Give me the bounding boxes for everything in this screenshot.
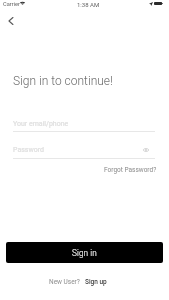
staticText: Forgot Password?: [104, 166, 157, 174]
staticText: 1:38 AM: [77, 1, 100, 8]
button[interactable]: Show password: [139, 143, 152, 156]
button[interactable]: Your email or phone: [13, 117, 155, 132]
button[interactable]: Password: [13, 143, 155, 158]
button[interactable]: Forgot Password?: [104, 166, 157, 174]
staticText: New User?: [49, 278, 80, 286]
staticText: Sign up: [85, 278, 107, 286]
button[interactable]: Back: [3, 13, 19, 29]
staticText: Carrier: [3, 1, 20, 8]
button[interactable]: Sign up: [85, 278, 107, 286]
button[interactable]: Sign in: [6, 242, 163, 263]
staticText: Sign in to continue!: [13, 74, 113, 88]
staticText: Your email/phone: [13, 120, 69, 128]
staticText: Password: [13, 146, 44, 154]
staticText: Sign in: [72, 248, 97, 258]
